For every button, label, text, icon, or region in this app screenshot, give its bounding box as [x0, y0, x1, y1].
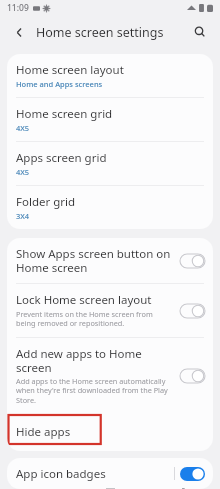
staticText: Home screen grid	[16, 106, 113, 122]
button[interactable]: Show Apps screen button on Home screen	[7, 238, 213, 283]
button[interactable]: Off	[180, 304, 205, 318]
button[interactable]: Lock Home screen layout	[7, 284, 213, 337]
button[interactable]: Folder grid	[7, 186, 213, 229]
staticText: Home screen layout	[16, 62, 124, 78]
staticText: 11:09	[7, 2, 29, 14]
staticText: 4X5	[16, 167, 30, 177]
staticText: Folder grid	[16, 194, 76, 210]
button[interactable]: Hide apps	[7, 414, 213, 451]
button[interactable]: Home screen grid	[7, 98, 213, 141]
staticText: Show Apps screen button on Home screen	[16, 246, 174, 275]
staticText: Add new apps to Home screen	[16, 346, 174, 375]
staticText: Hide apps	[16, 424, 71, 440]
staticText: 4X5	[16, 123, 30, 133]
button[interactable]: Apps screen grid	[7, 142, 213, 185]
button[interactable]: Home screen layout	[7, 54, 213, 97]
button[interactable]: Search	[189, 21, 211, 43]
staticText: Lock Home screen layout	[16, 292, 152, 308]
button[interactable]: Add new apps to Home screen	[7, 338, 213, 414]
staticText: Apps screen grid	[16, 150, 107, 166]
staticText: Prevent items on the Home screen from be…	[16, 309, 174, 329]
button[interactable]: Off	[180, 254, 205, 268]
staticText: 3X4	[16, 211, 30, 221]
staticText: Home and Apps screens	[16, 79, 103, 89]
staticText: App icon badges	[16, 466, 106, 481]
button[interactable]: Back	[9, 22, 29, 42]
button[interactable]: App icon badges	[7, 458, 213, 489]
staticText: Add apps to the Home screen automaticall…	[16, 376, 174, 406]
staticText: Home screen settings	[36, 24, 164, 41]
button[interactable]: Off	[180, 369, 205, 383]
button[interactable]: On	[180, 467, 205, 481]
